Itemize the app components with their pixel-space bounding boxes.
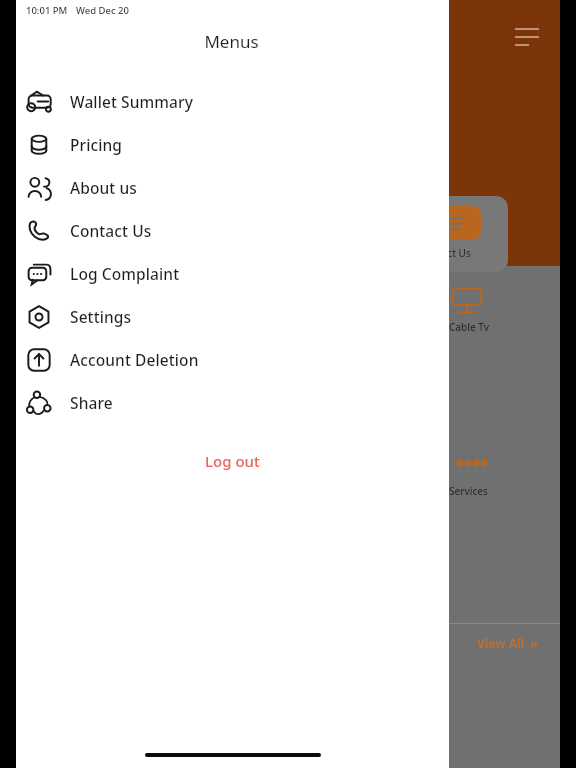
staticText: Settings	[70, 306, 132, 327]
staticText: Wallet Summary	[70, 91, 193, 112]
staticText: 10:01 PM	[26, 4, 68, 17]
staticText: Cable Tv	[449, 320, 489, 334]
button[interactable]: View All	[477, 634, 538, 652]
staticText: Contact Us	[419, 246, 471, 260]
button[interactable]: Share	[16, 381, 449, 424]
staticText: Log out	[205, 451, 260, 471]
button[interactable]: Open menu	[515, 28, 543, 50]
button[interactable]: Wallet Summary	[16, 80, 449, 123]
button[interactable]: About us	[16, 166, 449, 209]
button[interactable]: Log Complaint	[16, 252, 449, 295]
staticText: Account Deletion	[70, 349, 199, 370]
button[interactable]: Services	[415, 448, 526, 506]
button[interactable]: Log out	[16, 446, 449, 476]
staticText: View All	[477, 635, 525, 651]
staticText: Share	[70, 392, 113, 413]
staticText: Log Complaint	[70, 263, 180, 284]
button[interactable]: Contact Us	[397, 196, 508, 272]
staticText: Contact Us	[70, 220, 152, 241]
button[interactable]: Pricing	[16, 123, 449, 166]
staticText: About us	[70, 177, 137, 198]
staticText: »	[530, 634, 538, 652]
button[interactable]: Cable Tv	[415, 282, 525, 340]
button[interactable]: Settings	[16, 295, 449, 338]
staticText: Menus	[204, 30, 259, 53]
staticText: Wed Dec 20	[76, 4, 129, 17]
button[interactable]: Contact Us	[16, 209, 449, 252]
staticText: Pricing	[70, 134, 123, 155]
button[interactable]: Account Deletion	[16, 338, 449, 381]
staticText: Services	[449, 484, 488, 498]
